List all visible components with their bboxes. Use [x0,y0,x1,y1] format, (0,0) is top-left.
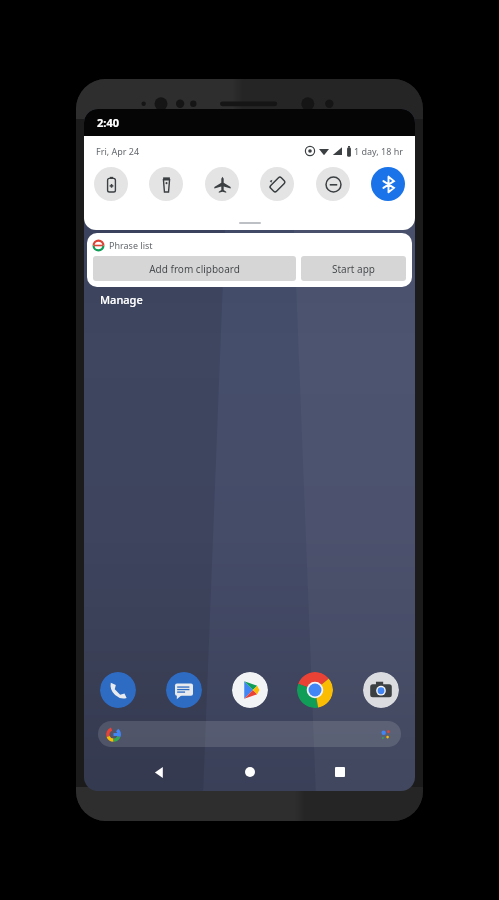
button[interactable]: Add from clipboard [93,256,296,281]
staticText: Start app [332,262,375,276]
button[interactable]: Phrase list [87,233,412,287]
button[interactable]: Start app [301,256,406,281]
staticText: Phrase list [109,239,153,251]
staticText: Add from clipboard [149,262,240,276]
button[interactable]: Phone [100,672,136,708]
button[interactable]: Flashlight [149,167,183,201]
button[interactable]: Chrome [297,672,333,708]
button[interactable]: Play Store [232,672,268,708]
staticText: Manage [100,292,143,307]
button[interactable]: Back [144,759,174,785]
button[interactable]: Auto rotate [260,167,294,201]
staticText: 2:40 [97,115,119,130]
staticText: 1 day, 18 hr [354,145,403,157]
button[interactable]: Home [235,759,265,785]
button[interactable]: Search [98,721,401,747]
button[interactable]: Bluetooth [371,167,405,201]
button[interactable]: Airplane mode [205,167,239,201]
button[interactable]: Messages [166,672,202,708]
button[interactable]: Recent apps [325,759,355,785]
staticText: Fri, Apr 24 [96,145,140,157]
button[interactable]: Battery Saver [94,167,128,201]
button[interactable]: Camera [363,672,399,708]
button[interactable]: Do not disturb [316,167,350,201]
